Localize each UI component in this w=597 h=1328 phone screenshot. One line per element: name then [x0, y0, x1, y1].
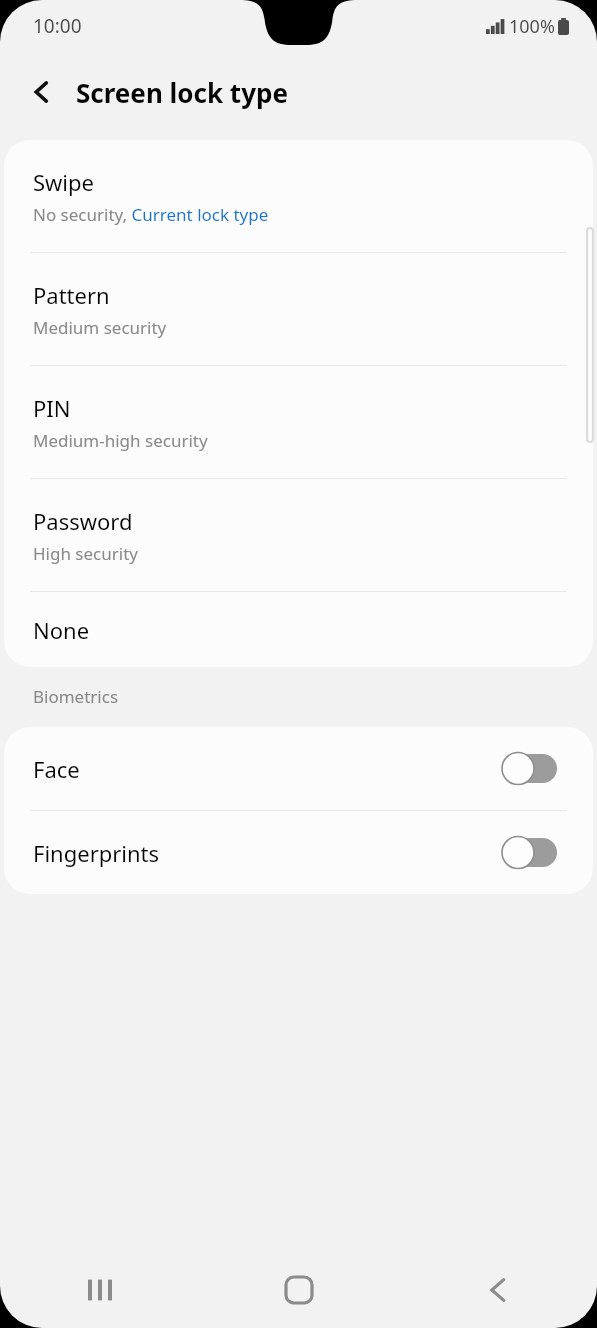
staticText: High security — [33, 542, 138, 565]
staticText: Medium security — [33, 316, 167, 339]
staticText: 10:00 — [33, 13, 82, 39]
button[interactable]: Back — [18, 68, 66, 116]
staticText: Medium-high security — [33, 429, 208, 452]
staticText: Pattern — [33, 280, 110, 310]
button[interactable]: Password — [4, 479, 593, 591]
button[interactable]: Back — [398, 1252, 597, 1328]
staticText: No security, Current lock type — [33, 203, 269, 226]
staticText: Screen lock type — [76, 75, 288, 110]
button[interactable]: Fingerprints — [4, 811, 593, 894]
button[interactable]: Swipe — [4, 140, 593, 252]
staticText: Password — [33, 506, 133, 536]
button[interactable]: Face — [4, 727, 593, 810]
staticText: Face — [33, 754, 502, 784]
staticText: 100% — [509, 14, 555, 39]
staticText: None — [33, 615, 90, 645]
staticText: Swipe — [33, 167, 94, 197]
staticText: PIN — [33, 393, 71, 423]
button[interactable]: None — [4, 592, 593, 667]
staticText: Biometrics — [33, 685, 119, 708]
button[interactable]: PIN — [4, 366, 593, 478]
staticText: Fingerprints — [33, 838, 502, 868]
button[interactable]: Recents — [0, 1252, 199, 1328]
button[interactable]: Home — [199, 1252, 398, 1328]
button[interactable]: Pattern — [4, 253, 593, 365]
